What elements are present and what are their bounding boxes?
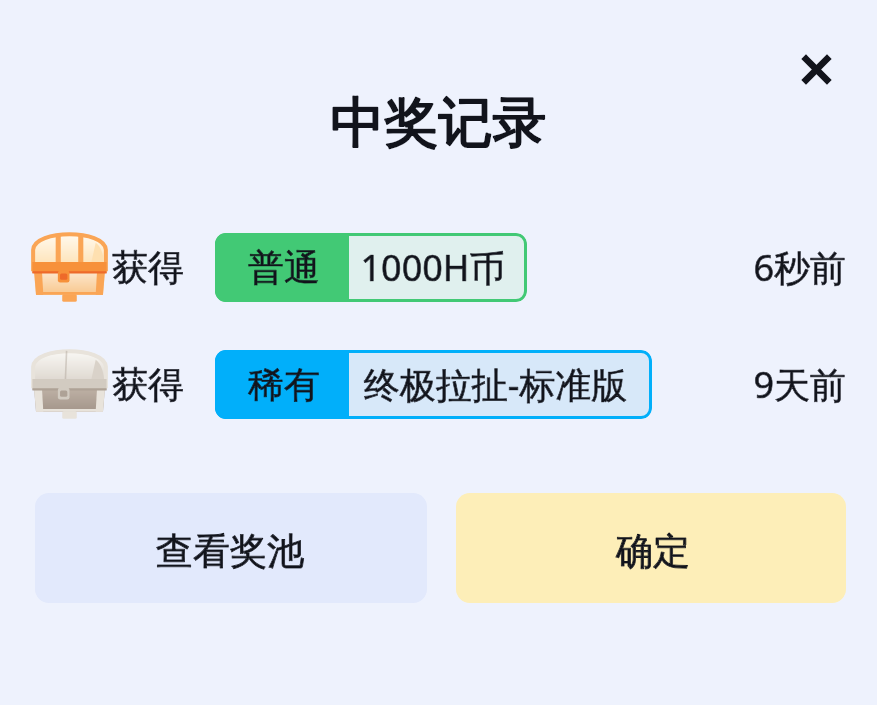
staticText: 查看奖池 (35, 528, 426, 575)
staticText: 中奖记录 (0, 89, 877, 157)
staticText: 稀有 (217, 362, 351, 407)
staticText: 6秒前 (686, 243, 846, 292)
staticText: 确定 (458, 528, 846, 575)
staticText: 6秒前 (686, 243, 846, 292)
button[interactable]: 确定 (456, 493, 846, 603)
staticText: 9天前 (686, 360, 846, 409)
staticText: 确定 (458, 528, 846, 575)
staticText: 获得 (112, 245, 192, 290)
staticText: 1000H币 (344, 243, 522, 292)
staticText: 9天前 (686, 360, 846, 409)
staticText: 获得 (112, 245, 192, 290)
staticText: 终极拉扯-标准版 (344, 360, 647, 409)
staticText: 获得 (112, 362, 192, 407)
staticText: 查看奖池 (35, 528, 426, 575)
staticText: 普通 (217, 245, 351, 290)
staticText: 获得 (112, 362, 192, 407)
button[interactable]: 普通 (215, 233, 527, 302)
button[interactable]: 查看奖池 (35, 493, 427, 603)
button[interactable]: 稀有 (215, 350, 652, 419)
staticText: 中奖记录 (0, 89, 877, 157)
staticText: 稀有 (217, 362, 351, 407)
staticText: 1000H币 (344, 243, 522, 292)
button[interactable]: Close (787, 40, 845, 98)
staticText: 普通 (217, 245, 351, 290)
staticText: 终极拉扯-标准版 (344, 360, 647, 409)
